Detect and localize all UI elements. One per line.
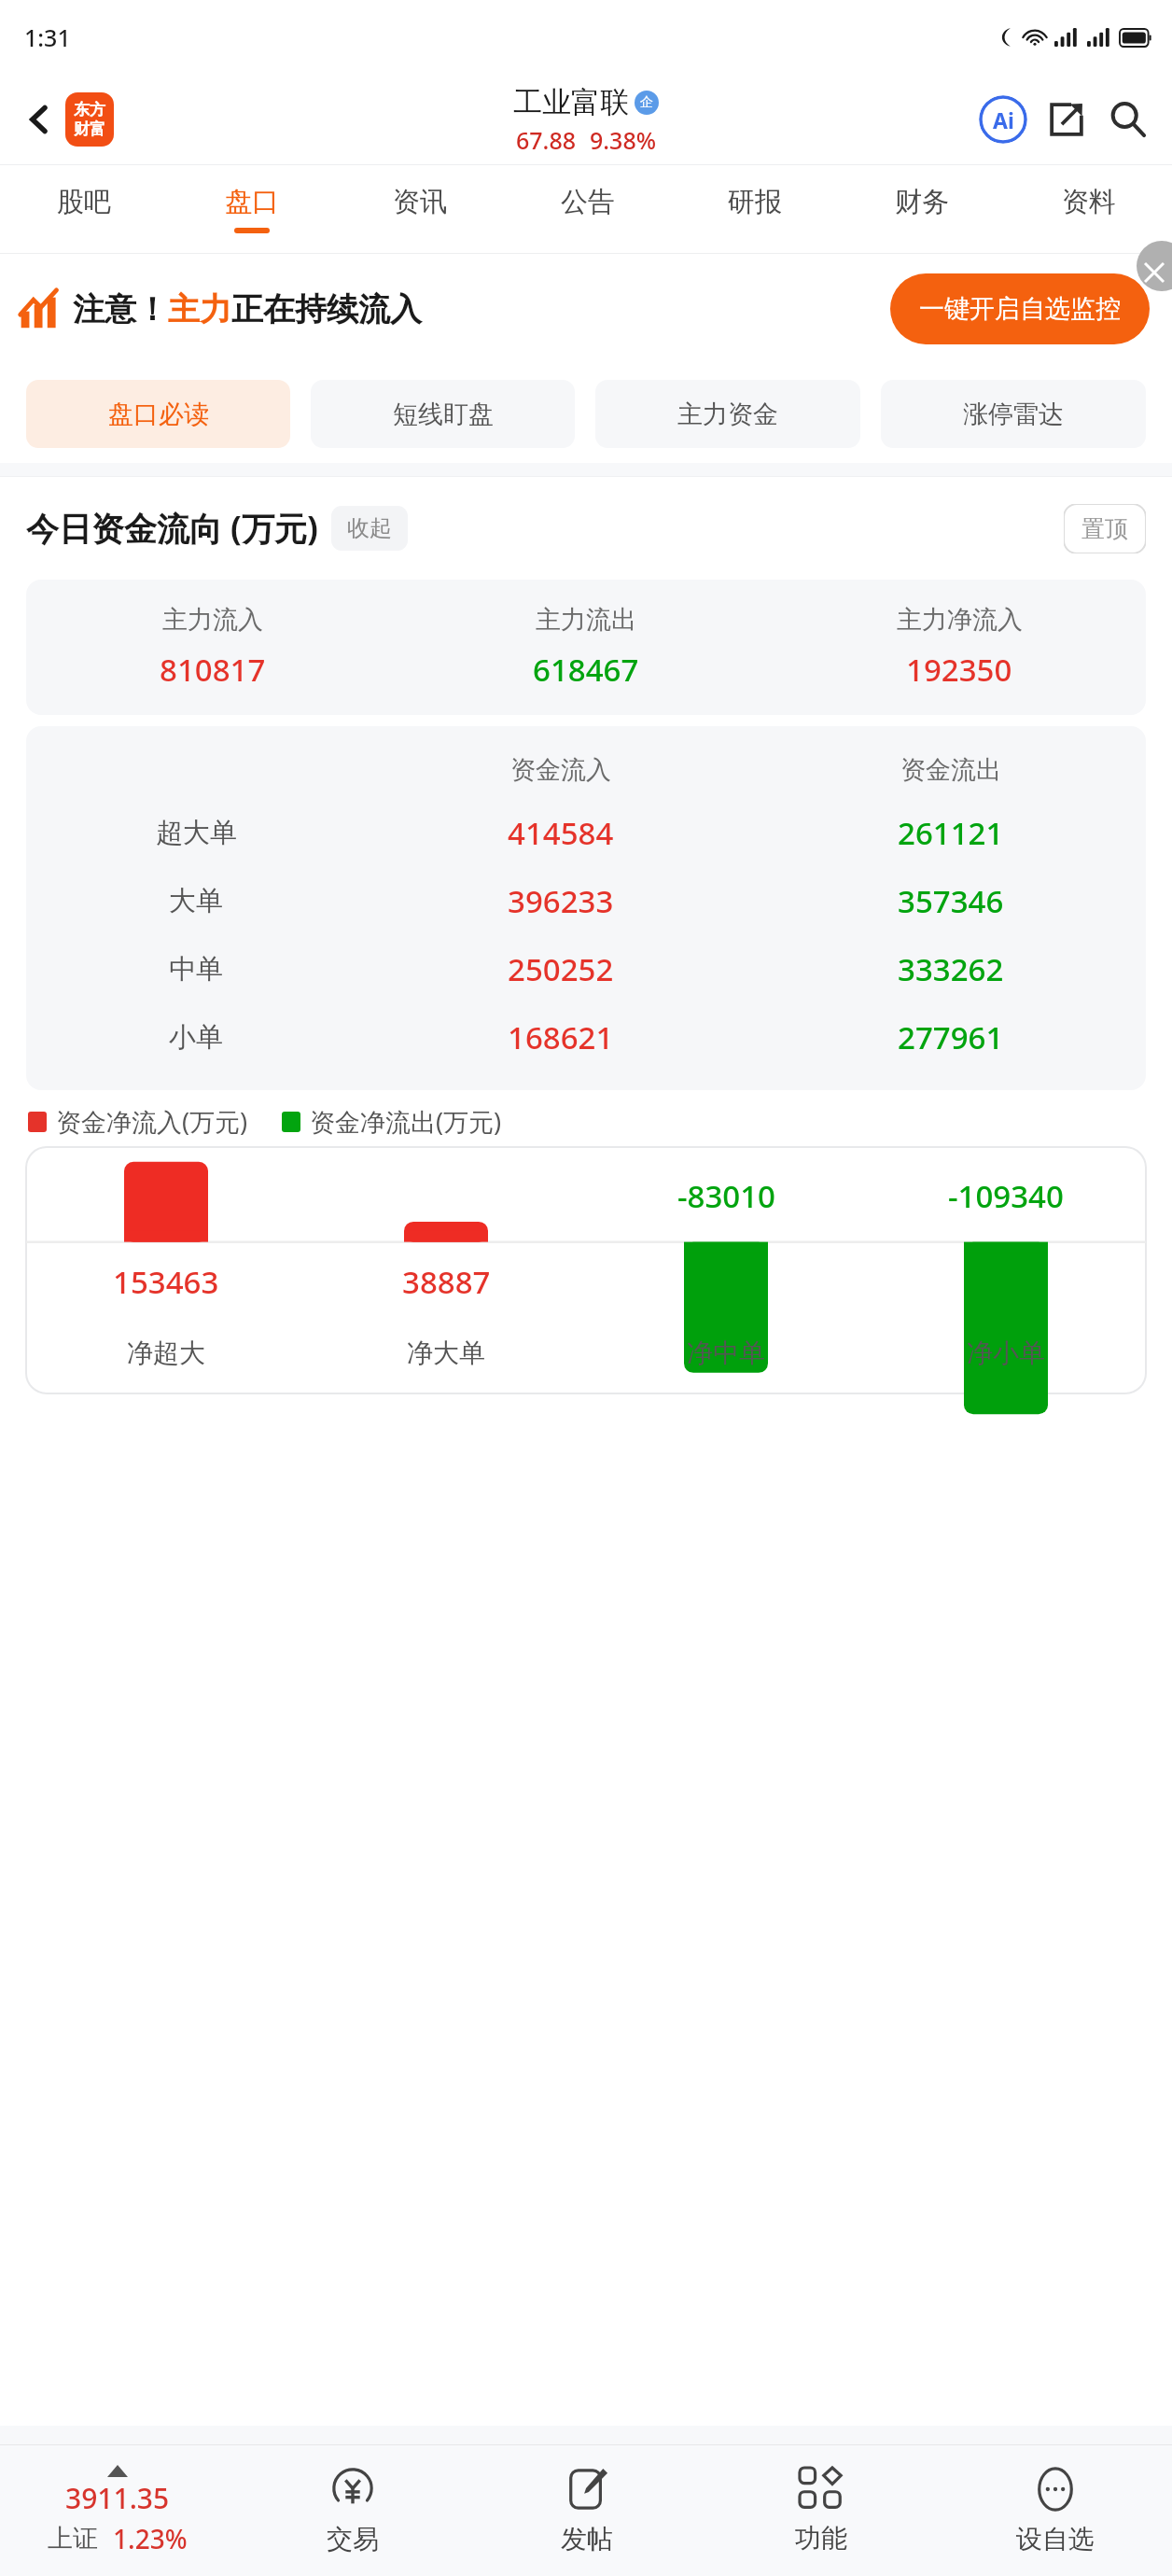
button[interactable]: East Money <box>65 92 114 147</box>
staticText: 财务 <box>895 185 949 219</box>
staticText: 333262 <box>898 948 1004 990</box>
button[interactable]: 一键开启自选监控 <box>890 273 1150 344</box>
staticText: 盘口 <box>225 185 279 219</box>
button[interactable]: Back <box>13 93 65 146</box>
button[interactable]: 发帖 <box>469 2445 704 2576</box>
button[interactable]: 盘口必读 <box>26 380 290 448</box>
button[interactable]: 资讯 <box>336 165 504 253</box>
staticText: 超大单 <box>156 816 237 850</box>
button[interactable]: 主力资金 <box>595 380 860 448</box>
button[interactable]: 股吧 <box>0 165 168 253</box>
button[interactable]: 功能 <box>704 2445 938 2576</box>
staticText: 618467 <box>533 649 639 691</box>
staticText: 净超大 <box>127 1337 205 1369</box>
staticText: 357346 <box>898 880 1004 922</box>
staticText: 261121 <box>898 812 1004 854</box>
button[interactable]: 资料 <box>1005 165 1172 253</box>
button[interactable]: 盘口 <box>168 165 336 253</box>
staticText: 注意！ <box>73 289 168 329</box>
button[interactable]: 收起 <box>331 506 408 551</box>
staticText: 192350 <box>906 649 1012 691</box>
staticText: 1.23% <box>113 2521 188 2556</box>
staticText: 资金流入 <box>510 754 611 786</box>
staticText: 1:31 <box>24 21 71 53</box>
button[interactable]: 153463 <box>26 1147 1146 1393</box>
staticText: 交易 <box>327 2523 379 2555</box>
staticText: 正在持续流入 <box>231 289 422 329</box>
button[interactable]: 研报 <box>671 165 838 253</box>
staticText: 主力 <box>168 289 231 329</box>
staticText: 小单 <box>169 1020 223 1055</box>
staticText: 67.88 <box>516 124 577 156</box>
staticText: 主力净流入 <box>897 604 1023 636</box>
button[interactable]: 交易 <box>235 2445 469 2576</box>
staticText: 主力流出 <box>536 604 636 636</box>
button[interactable]: 置顶 <box>1064 504 1146 553</box>
staticText: 一键开启自选监控 <box>919 293 1121 325</box>
button[interactable]: 资金流入 <box>26 726 1146 1090</box>
staticText: 财富 <box>74 119 105 139</box>
button[interactable]: 注意！ <box>19 254 1150 364</box>
button[interactable]: 主力流入 <box>26 580 1146 715</box>
button[interactable]: 短线盯盘 <box>311 380 575 448</box>
staticText: 38887 <box>402 1261 491 1303</box>
staticText: 资讯 <box>393 185 447 219</box>
staticText: 涨停雷达 <box>963 399 1064 430</box>
button[interactable]: Search <box>1099 91 1157 148</box>
staticText: 功能 <box>795 2522 847 2555</box>
staticText: 今日资金流向 (万元) <box>26 506 318 551</box>
staticText: 短线盯盘 <box>393 399 494 430</box>
staticText: 净大单 <box>407 1337 485 1369</box>
staticText: 净小单 <box>967 1337 1045 1369</box>
staticText: 工业富联 <box>513 84 629 120</box>
staticText: 153463 <box>113 1261 219 1303</box>
staticText: 研报 <box>728 185 782 219</box>
staticText: 净中单 <box>687 1337 765 1369</box>
staticText: 收起 <box>347 514 392 542</box>
staticText: 置顶 <box>1081 514 1128 543</box>
button[interactable]: Close <box>1137 241 1172 291</box>
staticText: 396233 <box>508 880 614 922</box>
button[interactable]: AI assistant <box>974 91 1032 148</box>
button[interactable]: 3911.35 <box>0 2465 235 2556</box>
staticText: 企 <box>640 94 653 111</box>
staticText: 资金流出 <box>900 754 1001 786</box>
staticText: 公告 <box>561 185 615 219</box>
staticText: -109340 <box>948 1175 1064 1217</box>
button[interactable]: 公告 <box>504 165 671 253</box>
staticText: 大单 <box>169 884 223 918</box>
staticText: 资金净流出(万元) <box>310 1104 502 1139</box>
staticText: 277961 <box>898 1016 1004 1058</box>
button[interactable]: Share <box>1038 91 1095 148</box>
staticText: 设自选 <box>1016 2523 1095 2555</box>
staticText: 168621 <box>508 1016 614 1058</box>
button[interactable]: 设自选 <box>938 2445 1172 2576</box>
staticText: 资金净流入(万元) <box>56 1104 248 1139</box>
staticText: Ai <box>993 105 1014 134</box>
staticText: 主力流入 <box>162 604 263 636</box>
staticText: 中单 <box>169 952 223 987</box>
staticText: 250252 <box>508 948 614 990</box>
staticText: 东方 <box>74 100 105 119</box>
staticText: 810817 <box>160 649 266 691</box>
staticText: 资料 <box>1062 185 1116 219</box>
button[interactable]: 涨停雷达 <box>881 380 1146 448</box>
staticText: 414584 <box>508 812 614 854</box>
staticText: 3911.35 <box>65 2479 170 2517</box>
staticText: 上证 <box>48 2523 98 2555</box>
button[interactable]: 财务 <box>838 165 1005 253</box>
staticText: 股吧 <box>57 185 111 219</box>
staticText: -83010 <box>677 1175 775 1217</box>
staticText: 盘口必读 <box>108 399 209 430</box>
staticText: 发帖 <box>561 2523 613 2555</box>
staticText: 9.38% <box>590 124 657 156</box>
staticText: 主力资金 <box>677 399 778 430</box>
